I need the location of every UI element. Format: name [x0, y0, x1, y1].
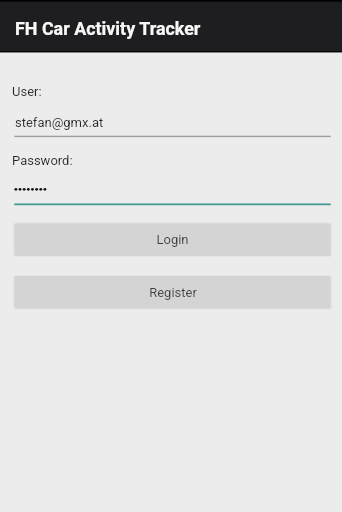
- staticText: stefan@gmx.at: [15, 115, 104, 130]
- staticText: Register: [149, 285, 197, 300]
- button[interactable]: Register: [14, 276, 331, 309]
- staticText: Login: [156, 232, 189, 247]
- staticText: User:: [12, 84, 42, 99]
- button[interactable]: Login: [14, 223, 331, 256]
- staticText: FH Car Activity Tracker: [15, 18, 201, 39]
- staticText: Password:: [12, 153, 73, 168]
